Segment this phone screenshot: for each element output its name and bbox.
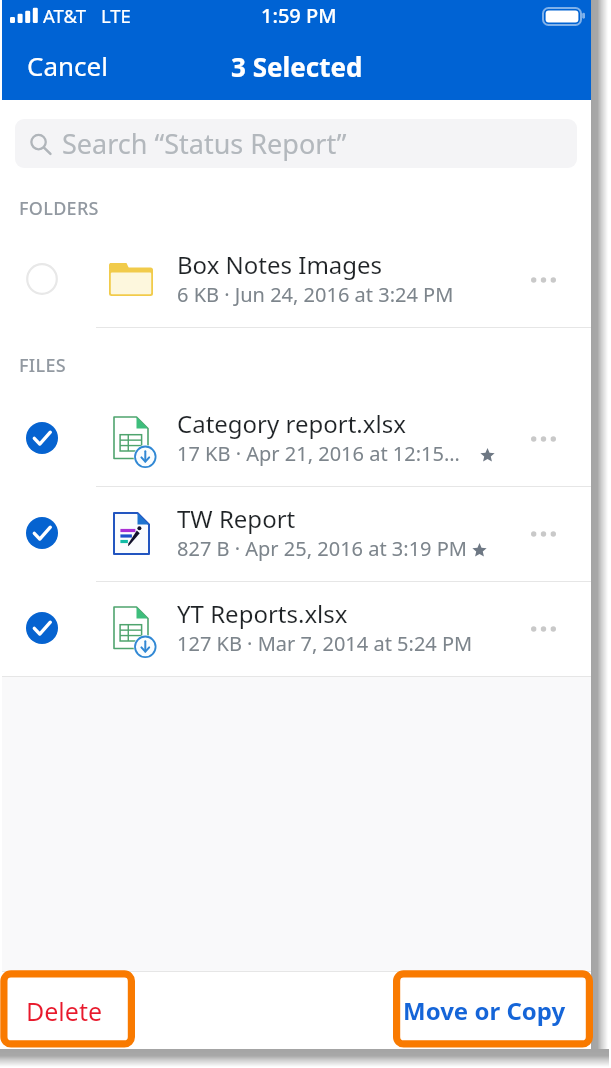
staticText: Delete [26,994,103,1028]
button[interactable]: More options [513,602,573,656]
staticText: Category report.xlsx [177,407,517,440]
staticText: TW Report [177,502,517,535]
button[interactable]: Category report.xlsx [2,392,591,486]
button[interactable]: More options [513,507,573,561]
staticText: AT&T [43,3,87,28]
staticText: LTE [101,3,131,28]
staticText: 3 Selected [231,49,363,84]
staticText: YT Reports.xlsx [177,597,517,630]
staticText: Box Notes Images [177,248,517,281]
staticText: 17 KB · Apr 21, 2016 at 12:15… [177,440,507,467]
button[interactable]: Cancel [13,44,122,87]
button[interactable]: YT Reports.xlsx [2,582,591,676]
staticText: 6 KB · Jun 24, 2016 at 3:24 PM [177,281,507,308]
staticText: FOLDERS [19,196,99,221]
button[interactable]: Search “Status Report” [15,119,577,168]
button[interactable]: Box Notes Images [2,233,591,327]
button[interactable]: Delete [8,972,121,1049]
button[interactable]: More options [513,412,573,466]
staticText: Move or Copy [403,994,566,1027]
staticText: 1:59 PM [261,2,337,29]
staticText: Search “Status Report” [62,125,347,162]
staticText: 127 KB · Mar 7, 2014 at 5:24 PM [177,630,507,657]
staticText: Cancel [27,48,108,83]
button[interactable]: Move or Copy [387,972,582,1049]
button[interactable]: TW Report [2,487,591,581]
staticText: 827 B · Apr 25, 2016 at 3:19 PM [177,535,507,562]
staticText: FILES [19,353,66,378]
button[interactable]: More options [513,253,573,307]
